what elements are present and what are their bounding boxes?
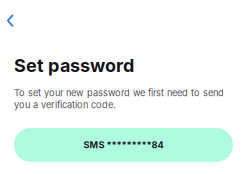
staticText: SMS *********84 [83, 139, 163, 150]
staticText: Set password [14, 55, 134, 76]
staticText: To set your new password we first need t… [14, 87, 224, 111]
button[interactable]: SMS *********84 [14, 128, 233, 162]
button[interactable]: Back [7, 10, 21, 32]
